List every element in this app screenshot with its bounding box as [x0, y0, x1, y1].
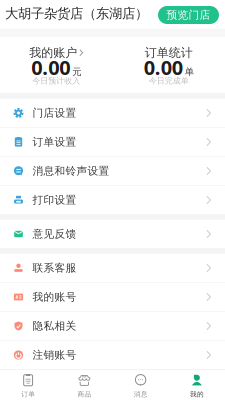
staticText: 意见反馈 — [32, 227, 76, 240]
button[interactable]: 预览门店 — [158, 3, 219, 24]
button[interactable]: 门店设置 — [0, 99, 225, 127]
staticText: 单 — [185, 66, 194, 78]
staticText: 消息和铃声设置 — [32, 164, 109, 177]
button[interactable]: 消息和铃声设置 — [0, 157, 225, 185]
staticText: 消息 — [134, 390, 148, 398]
button[interactable]: 订单 — [0, 370, 56, 400]
button[interactable]: 我的账号 — [0, 283, 225, 311]
button[interactable]: 订单设置 — [0, 128, 225, 156]
button[interactable]: 意见反馈 — [0, 220, 225, 248]
button[interactable]: 我的 — [169, 370, 225, 400]
staticText: 订单统计 — [145, 45, 193, 60]
staticText: 0.00 — [31, 54, 70, 81]
staticText: 订单 — [21, 390, 35, 398]
staticText: 联系客服 — [32, 261, 76, 274]
button[interactable]: 联系客服 — [0, 254, 225, 282]
button[interactable]: 打印设置 — [0, 186, 225, 214]
staticText: 订单设置 — [32, 135, 76, 148]
staticText: 我的账号 — [32, 290, 76, 303]
staticText: 隐私相关 — [32, 319, 76, 332]
staticText: 元 — [72, 66, 81, 78]
staticText: 我的账户 — [29, 45, 77, 60]
staticText: 门店设置 — [32, 106, 76, 119]
button[interactable]: 注销账号 — [0, 341, 225, 369]
staticText: 大胡子杂货店（东湖店） — [5, 5, 148, 22]
staticText: 打印设置 — [32, 193, 76, 206]
button[interactable]: 隐私相关 — [0, 312, 225, 340]
staticText: 商品 — [77, 390, 91, 398]
staticText: 注销账号 — [32, 348, 76, 361]
staticText: 0.00 — [144, 54, 183, 81]
button[interactable]: 我的账户 — [0, 37, 112, 93]
staticText: 今日预计收入 — [32, 76, 80, 86]
staticText: 今日完成单 — [149, 76, 189, 86]
button[interactable]: 消息 — [112, 370, 169, 400]
staticText: 我的 — [190, 390, 204, 398]
button[interactable]: 商品 — [56, 370, 112, 400]
button[interactable]: 订单统计 — [112, 37, 225, 93]
staticText: 预览门店 — [166, 8, 210, 21]
